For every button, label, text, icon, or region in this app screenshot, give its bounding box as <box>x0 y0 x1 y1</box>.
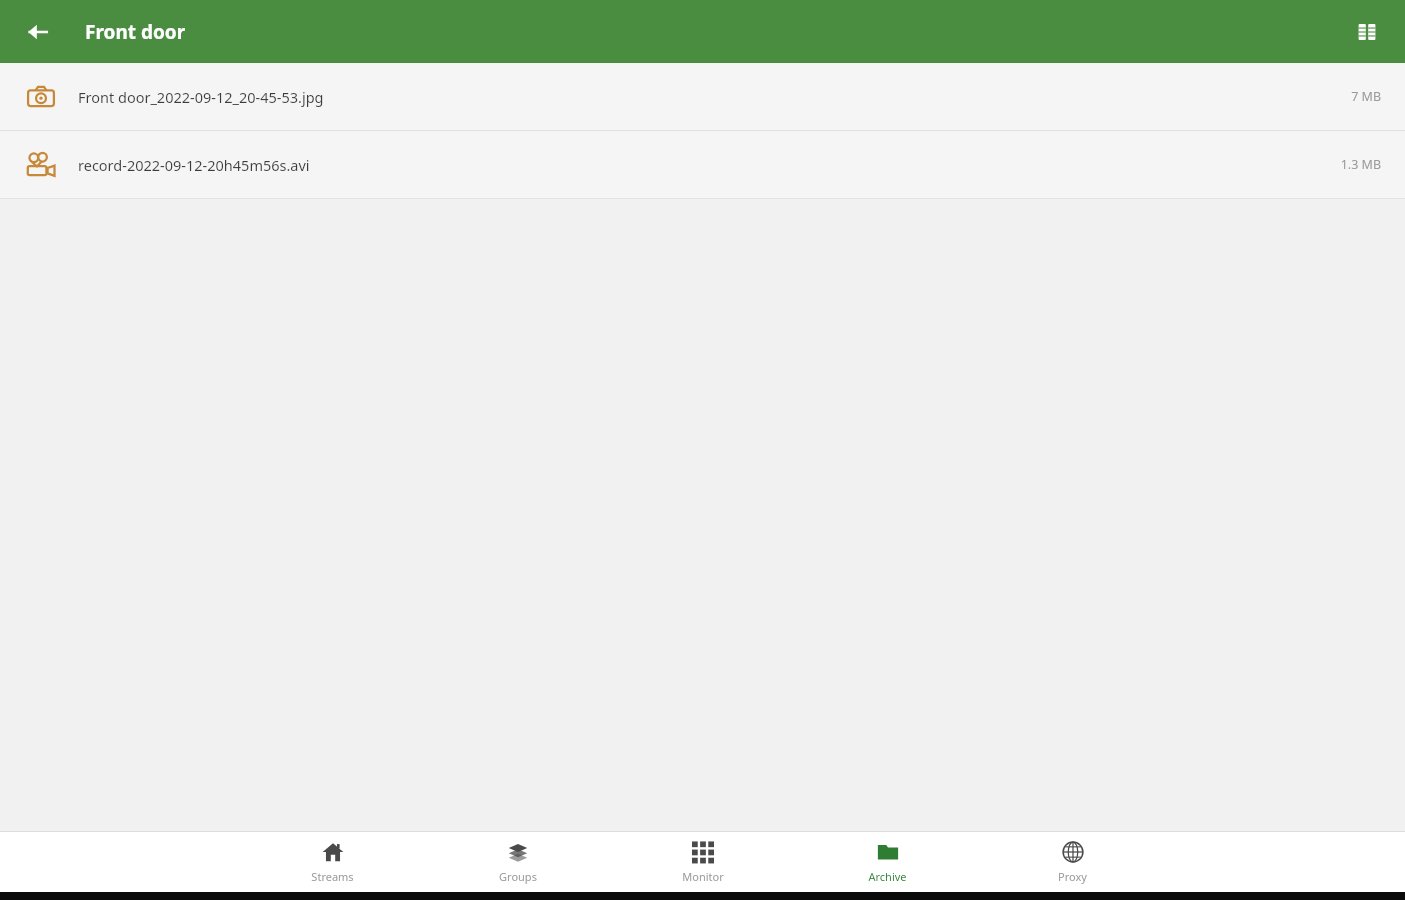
button[interactable]: Front door_2022-09-12_20-45-53.jpg <box>0 63 1405 130</box>
staticText: 7 MB <box>1351 88 1381 105</box>
button[interactable]: Streams <box>240 832 425 892</box>
staticText: Groups <box>499 869 537 884</box>
staticText: record-2022-09-12-20h45m56s.avi <box>78 155 1340 175</box>
button[interactable]: record-2022-09-12-20h45m56s.avi <box>0 131 1405 198</box>
button[interactable]: Groups <box>425 832 610 892</box>
staticText: Front door_2022-09-12_20-45-53.jpg <box>78 87 1351 107</box>
button[interactable]: Proxy <box>980 832 1165 892</box>
button[interactable]: Monitor <box>610 832 795 892</box>
button[interactable]: Back <box>16 10 60 54</box>
staticText: Front door <box>85 19 186 45</box>
button[interactable]: Storage <box>1345 10 1389 54</box>
button[interactable]: Archive <box>795 832 980 892</box>
staticText: Monitor <box>682 869 724 884</box>
staticText: Proxy <box>1058 869 1087 884</box>
staticText: 1.3 MB <box>1340 156 1381 173</box>
staticText: Archive <box>868 869 907 884</box>
staticText: Streams <box>311 869 354 884</box>
